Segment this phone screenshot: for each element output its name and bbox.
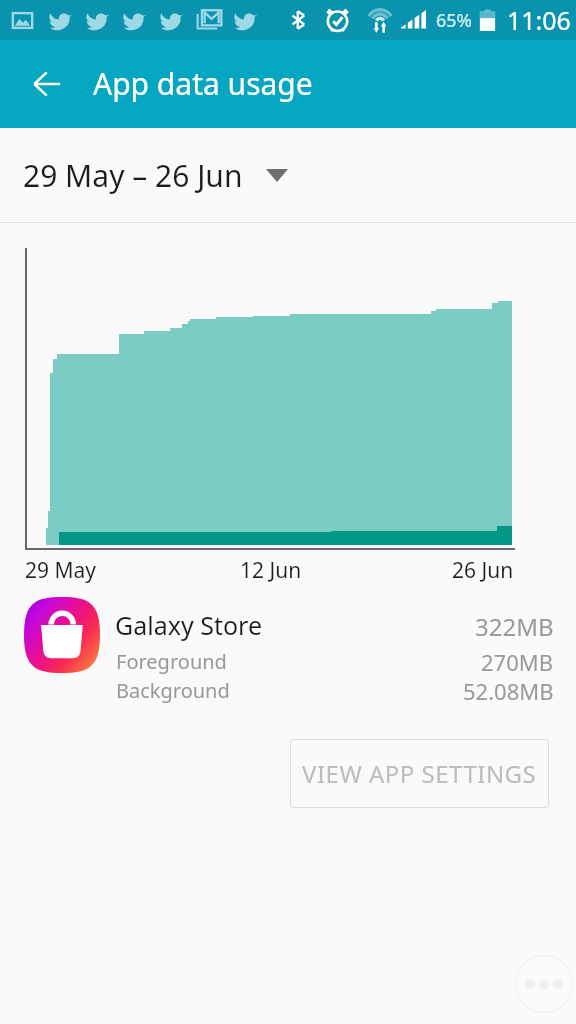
staticText: 270MB — [481, 647, 554, 677]
button[interactable]: Galaxy Store — [0, 583, 576, 709]
staticText: Background — [116, 677, 230, 704]
staticText: 26 Jun — [452, 556, 514, 585]
button[interactable]: 29 May – 26 Jun — [0, 128, 576, 222]
button[interactable]: More options — [515, 955, 573, 1013]
staticText: App data usage — [93, 63, 313, 104]
staticText: 12 Jun — [240, 556, 302, 585]
staticText: 52.08MB — [463, 676, 554, 706]
staticText: 65% — [436, 8, 472, 33]
staticText: 29 May — [25, 556, 97, 585]
staticText: VIEW APP SETTINGS — [302, 757, 537, 790]
staticText: 11:06 — [507, 3, 571, 37]
staticText: 322MB — [475, 610, 554, 643]
staticText: Foreground — [116, 648, 227, 675]
button[interactable]: Back — [18, 55, 76, 113]
staticText: 29 May – 26 Jun — [23, 155, 243, 196]
staticText: Galaxy Store — [115, 608, 262, 642]
button[interactable]: VIEW APP SETTINGS — [290, 739, 549, 808]
